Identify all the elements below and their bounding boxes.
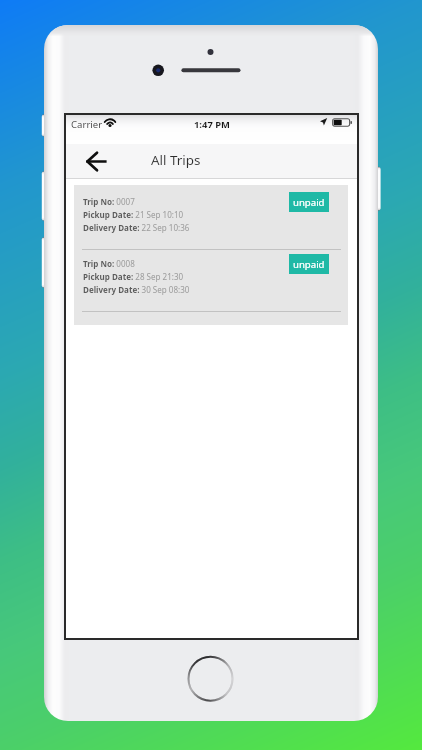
staticText: All Trips <box>151 151 201 169</box>
button[interactable]: Back <box>77 144 115 178</box>
staticText: unpaid <box>293 258 325 271</box>
staticText: Trip No: 0007 Pickup Date: 21 Sep 10:10 … <box>83 196 190 233</box>
button[interactable]: unpaid <box>289 192 329 212</box>
staticText: unpaid <box>293 196 325 209</box>
button[interactable]: unpaid <box>289 254 329 274</box>
staticText: 1:47 PM <box>194 118 230 131</box>
staticText: Carrier <box>71 118 103 131</box>
staticText: Trip No: 0008 Pickup Date: 28 Sep 21:30 … <box>83 258 190 295</box>
button[interactable]: Trip No: 0008 Pickup Date: 28 Sep 21:30 … <box>74 250 348 311</box>
button[interactable]: Trip No: 0007 Pickup Date: 21 Sep 10:10 … <box>74 187 348 249</box>
